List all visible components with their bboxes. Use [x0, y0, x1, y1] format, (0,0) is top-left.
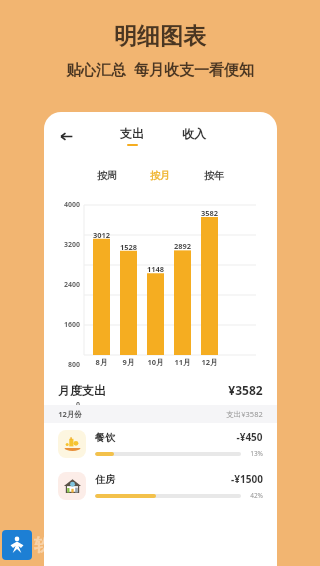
button[interactable]: 餐饮 [44, 423, 277, 465]
button[interactable]: 返回 [52, 122, 80, 150]
staticText: ¥3582 [228, 382, 263, 398]
staticText: 软件学堂 [34, 535, 102, 556]
staticText: 2892 [166, 241, 199, 251]
staticText: 13% [245, 449, 263, 458]
staticText: 贴心汇总 每月收支一看便知 [66, 59, 254, 79]
staticText: 11月 [166, 357, 199, 367]
staticText: -¥1500 [231, 472, 263, 486]
staticText: 支出 [120, 126, 144, 141]
staticText: 收入 [182, 126, 206, 141]
staticText: 3582 [193, 208, 226, 218]
staticText: 明细图表 [114, 22, 206, 51]
staticText: 餐饮 [95, 431, 115, 444]
staticText: -¥450 [236, 430, 263, 444]
button[interactable]: 收入 [178, 124, 210, 148]
staticText: 住房 [95, 473, 115, 486]
button[interactable]: 按月 [133, 166, 187, 185]
staticText: 3012 [85, 230, 118, 240]
staticText: 1528 [112, 242, 145, 252]
staticText: 42% [245, 491, 263, 500]
button[interactable]: 住房 [44, 465, 277, 507]
staticText: 1148 [139, 264, 172, 274]
staticText: 支出¥3582 [226, 409, 263, 419]
staticText: 8月 [85, 357, 118, 367]
staticText: 10月 [139, 357, 172, 367]
staticText: 月度支出 [58, 383, 106, 398]
staticText: 12月份 [58, 409, 82, 419]
staticText: 按年 [204, 169, 224, 182]
button[interactable]: 月度支出 [44, 375, 277, 405]
staticText: 0 [54, 400, 80, 410]
button[interactable]: 按周 [80, 166, 133, 185]
staticText: 800 [54, 360, 80, 370]
staticText: 按月 [150, 169, 170, 182]
button[interactable]: 支出 [116, 124, 148, 148]
staticText: 1600 [54, 320, 80, 330]
staticText: 按周 [97, 169, 117, 182]
button[interactable]: 按年 [187, 166, 241, 185]
staticText: 3200 [54, 240, 80, 250]
staticText: 2400 [54, 280, 80, 290]
staticText: 4000 [54, 200, 80, 210]
staticText: 9月 [112, 357, 145, 367]
staticText: 12月 [193, 357, 226, 367]
